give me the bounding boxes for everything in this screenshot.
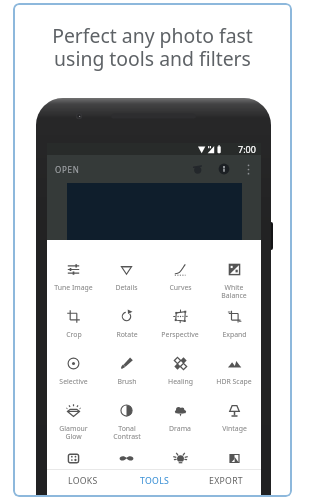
button[interactable]: Tune Image [47,256,100,292]
button[interactable]: Compare [187,159,207,179]
button[interactable]: More options [240,161,256,177]
staticText: LOOKS [68,475,98,487]
button[interactable]: Glamour Glow [47,397,100,441]
staticText: Perfect any photo fast using tools and f… [52,22,253,72]
button[interactable]: Rotate [100,303,153,339]
button[interactable] [207,445,261,472]
button[interactable]: Tonal Contrast [100,397,153,441]
button[interactable] [153,445,207,472]
button[interactable]: LOOKS [47,470,119,496]
button[interactable]: Selective [47,350,100,386]
button[interactable]: Healing [153,350,207,386]
button[interactable]: Perspective [153,303,207,339]
staticText: 7:00 [238,143,256,155]
button[interactable]: Details [100,256,153,292]
staticText: Expand [222,330,247,339]
button[interactable]: Brush [100,350,153,386]
staticText: Curves [169,283,192,292]
staticText: EXPORT [209,475,243,487]
button[interactable]: EXPORT [190,470,261,496]
button[interactable]: Crop [47,303,100,339]
button[interactable]: Vintage [207,397,261,433]
button[interactable]: Drama [153,397,207,433]
staticText: TOOLS [140,475,170,487]
staticText: Selective [59,377,88,386]
staticText: Glamour Glow [59,424,88,441]
staticText: Brush [117,377,137,386]
staticText: Details [115,283,138,292]
button[interactable]: TOOLS [119,470,190,496]
staticText: OPEN [55,164,80,175]
staticText: Drama [169,424,191,433]
button[interactable]: OPEN [54,160,81,179]
button[interactable]: Expand [207,303,261,339]
staticText: Perspective [161,330,199,339]
staticText: Rotate [116,330,138,339]
staticText: White Balance [221,283,247,300]
staticText: HDR Scape [216,377,252,386]
staticText: Crop [66,330,82,339]
staticText: Vintage [222,424,247,433]
staticText: Healing [168,377,193,386]
staticText: Tonal Contrast [113,424,141,441]
button[interactable] [47,445,100,472]
button[interactable] [100,445,153,472]
staticText: Tune Image [54,283,93,292]
button[interactable]: Curves [153,256,207,292]
button[interactable]: Info [214,159,234,179]
button[interactable]: White Balance [207,256,261,300]
button[interactable]: HDR Scape [207,350,261,386]
